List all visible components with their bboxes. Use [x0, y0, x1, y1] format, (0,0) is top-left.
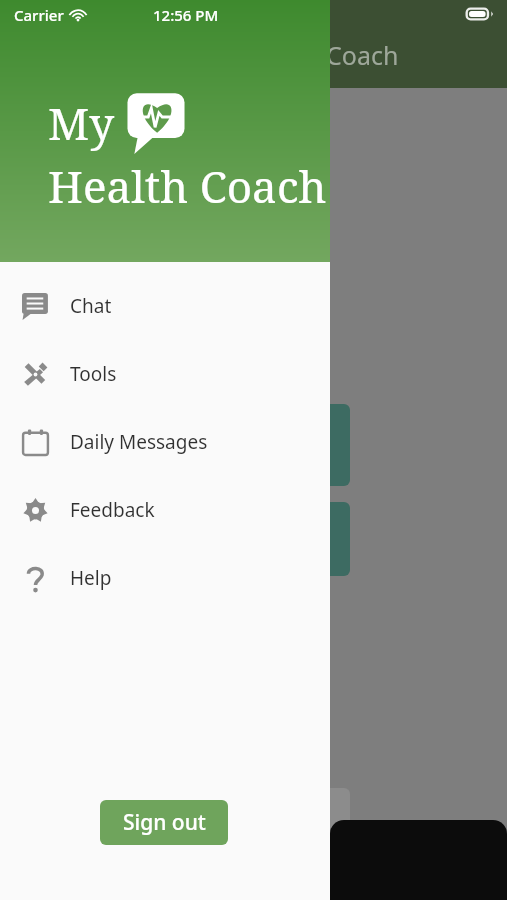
button[interactable]: Feedback	[0, 476, 330, 544]
staticText: Help	[70, 565, 112, 591]
button[interactable]: Help	[0, 544, 330, 612]
staticText: Feedback	[70, 497, 155, 523]
staticText: My	[48, 93, 115, 153]
staticText: Chat	[70, 293, 112, 319]
button[interactable]: Sign out	[100, 800, 228, 845]
button[interactable]: Tools	[0, 340, 330, 408]
staticText: Tools	[70, 361, 117, 387]
staticText: Sign out	[123, 808, 206, 837]
button[interactable]: Daily Messages	[0, 408, 330, 476]
staticText: My Health Coach	[200, 38, 399, 72]
staticText: 12:56 PM	[153, 5, 219, 25]
staticText: Health Coach	[48, 156, 327, 216]
button[interactable]: Chat	[0, 272, 330, 340]
staticText: Daily Messages	[70, 429, 208, 455]
staticText: Carrier	[14, 5, 64, 25]
